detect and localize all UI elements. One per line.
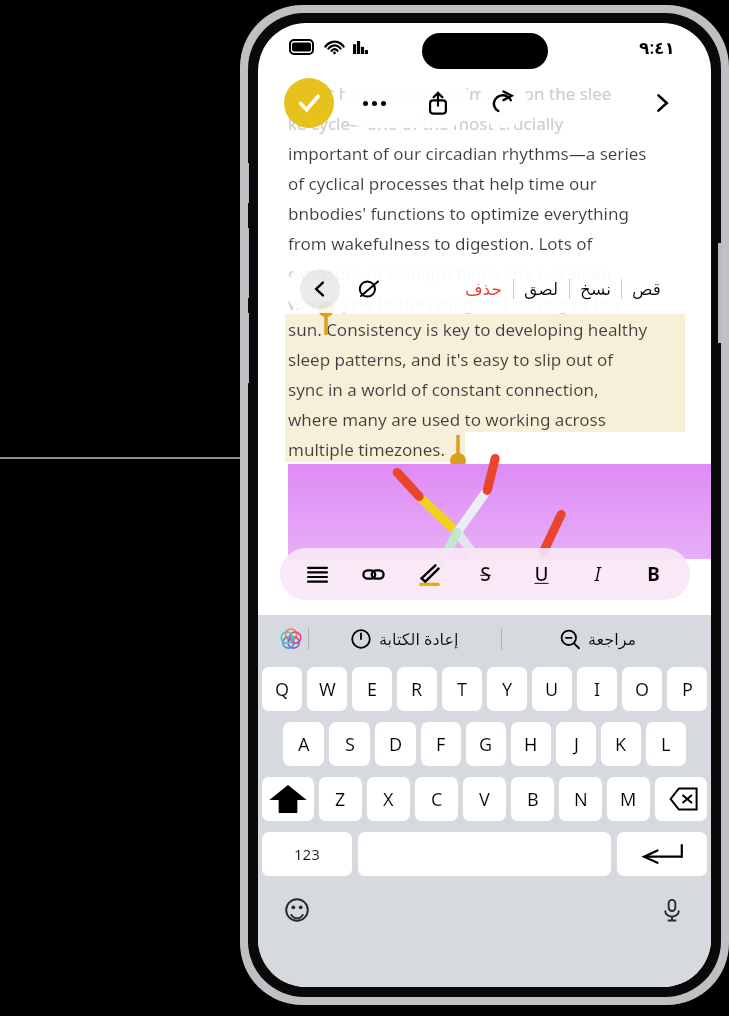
staticText: G xyxy=(479,732,493,757)
button[interactable]: P xyxy=(667,667,707,711)
staticText: P xyxy=(682,677,693,702)
button[interactable]: لصق xyxy=(514,265,569,313)
staticText: exposure to sunlight helps link our slee… xyxy=(288,262,617,285)
staticText: قص xyxy=(632,279,661,299)
button[interactable]: Highlight xyxy=(412,557,446,591)
button[interactable]: Next xyxy=(637,78,687,128)
staticText: O xyxy=(635,677,650,702)
staticText: B xyxy=(647,561,660,587)
staticText: H xyxy=(524,732,538,757)
staticText: N xyxy=(574,787,588,812)
button[interactable]: M xyxy=(607,777,650,821)
button[interactable]: 123 xyxy=(262,832,352,876)
button[interactable]: H xyxy=(511,722,551,766)
staticText: J xyxy=(574,732,579,757)
staticText: Q xyxy=(275,677,290,702)
staticText: nlight has a profound impact on the slee xyxy=(288,82,612,105)
button[interactable]: E xyxy=(352,667,392,711)
button[interactable]: X xyxy=(367,777,410,821)
staticText: T xyxy=(457,677,468,702)
staticText: L xyxy=(661,732,671,757)
button[interactable]: Lists xyxy=(300,557,334,591)
staticText: 123 xyxy=(294,844,320,864)
button[interactable]: C xyxy=(415,777,458,821)
staticText: U xyxy=(534,561,549,587)
staticText: sun. Consistency is key to developing he… xyxy=(288,318,648,341)
button[interactable]: Back xyxy=(300,269,340,309)
button[interactable]: F xyxy=(421,722,461,766)
button[interactable]: A xyxy=(283,722,324,766)
button[interactable]: Return xyxy=(617,832,707,876)
staticText: V xyxy=(479,787,490,812)
button[interactable]: U xyxy=(532,667,572,711)
button[interactable]: إعادة الكتابة xyxy=(309,615,501,663)
button[interactable]: G xyxy=(466,722,506,766)
staticText: E xyxy=(367,677,378,702)
button[interactable]: حذف xyxy=(455,265,513,313)
button[interactable]: R xyxy=(397,667,437,711)
staticText: X xyxy=(383,787,394,812)
staticText: R xyxy=(411,677,423,702)
button[interactable]: S xyxy=(329,722,370,766)
button[interactable]: Bold xyxy=(636,557,670,591)
button[interactable]: Shift xyxy=(262,777,314,821)
button[interactable]: Dictate xyxy=(655,893,689,927)
staticText: A xyxy=(298,732,310,757)
staticText: Sunlight and Sleep xyxy=(300,6,513,37)
button[interactable]: Y xyxy=(487,667,527,711)
button[interactable]: Strikethrough xyxy=(468,557,502,591)
button[interactable]: Share xyxy=(406,78,470,128)
button[interactable]: Z xyxy=(319,777,362,821)
button[interactable]: Redo xyxy=(478,78,528,128)
staticText: M xyxy=(620,787,637,812)
button[interactable]: قص xyxy=(622,265,671,313)
staticText: sync in a world of constant connection, xyxy=(288,378,599,401)
staticText: important of our circadian rhythms—a ser… xyxy=(288,142,647,165)
staticText: S xyxy=(345,732,355,757)
button[interactable]: Apple Intelligence xyxy=(274,622,308,656)
staticText: of cyclical processes that help time our xyxy=(288,172,597,195)
button[interactable]: I xyxy=(577,667,617,711)
staticText: لصق xyxy=(524,279,559,299)
button[interactable]: B xyxy=(511,777,554,821)
staticText: إعادة الكتابة xyxy=(379,628,459,650)
button[interactable]: نسخ xyxy=(570,265,621,313)
button[interactable]: Underline xyxy=(524,557,558,591)
button[interactable]: Italic xyxy=(580,557,614,591)
button[interactable]: Done xyxy=(284,78,334,128)
staticText: multiple timezones. xyxy=(288,438,446,461)
staticText: I xyxy=(594,677,601,702)
button[interactable]: Backspace xyxy=(655,777,707,821)
staticText: حذف xyxy=(465,279,503,299)
button[interactable]: J xyxy=(556,722,596,766)
staticText: wake cycle to the rising and setting of … xyxy=(288,292,620,315)
staticText: C xyxy=(431,787,443,812)
staticText: bnbodies' functions to optimize everythi… xyxy=(288,202,629,225)
button[interactable]: D xyxy=(375,722,416,766)
staticText: W xyxy=(319,677,336,702)
button[interactable]: O xyxy=(622,667,662,711)
staticText: Z xyxy=(335,787,346,812)
button[interactable]: W xyxy=(307,667,347,711)
staticText: Y xyxy=(502,677,513,702)
button[interactable]: K xyxy=(601,722,641,766)
button[interactable]: Emoji xyxy=(280,893,314,927)
button[interactable]: Link xyxy=(356,557,390,591)
staticText: sleep patterns, and it's easy to slip ou… xyxy=(288,348,614,371)
staticText: I xyxy=(594,561,601,587)
button[interactable]: More xyxy=(342,78,406,128)
staticText: مراجعة xyxy=(588,630,637,649)
staticText: ٩:٤١ xyxy=(639,36,675,59)
button[interactable]: Q xyxy=(262,667,302,711)
button[interactable]: N xyxy=(559,777,602,821)
button[interactable]: L xyxy=(646,722,686,766)
button[interactable]: مراجعة xyxy=(502,615,695,663)
button[interactable]: V xyxy=(463,777,506,821)
staticText: K xyxy=(615,732,627,757)
staticText: D xyxy=(389,732,403,757)
button[interactable]: Spell check xyxy=(354,274,384,304)
staticText: F xyxy=(436,732,446,757)
button[interactable]: T xyxy=(442,667,482,711)
staticText: from wakefulness to digestion. Lots of xyxy=(288,232,593,255)
